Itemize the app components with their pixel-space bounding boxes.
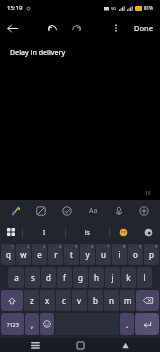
- staticText: 6: [91, 244, 94, 249]
- staticText: e: [37, 249, 42, 260]
- button[interactable]: v: [72, 290, 87, 311]
- staticText: is: [85, 228, 90, 237]
- button[interactable]: I: [23, 222, 65, 242]
- staticText: y: [85, 249, 90, 260]
- staticText: w: [20, 249, 27, 260]
- button[interactable]: g: [73, 267, 88, 288]
- staticText: 81%: [144, 5, 153, 11]
- staticText: v: [77, 295, 82, 306]
- staticText: x: [45, 295, 50, 306]
- staticText: Aa: [89, 206, 98, 216]
- button[interactable]: Done: [127, 16, 160, 40]
- staticText: I: [43, 228, 46, 237]
- button[interactable]: y: [80, 244, 95, 265]
- button[interactable]: Backspace: [136, 290, 159, 311]
- staticText: 1: [11, 244, 14, 249]
- button[interactable]: q: [1, 244, 15, 265]
- staticText: q: [6, 249, 11, 260]
- button[interactable]: s: [25, 267, 40, 288]
- staticText: m: [124, 295, 132, 306]
- staticText: g: [78, 272, 83, 283]
- staticText: 2: [27, 244, 30, 249]
- staticText: l: [143, 272, 146, 283]
- button[interactable]: Emoji keyboard: [40, 313, 54, 335]
- button[interactable]: j: [105, 267, 120, 288]
- button[interactable]: Back: [0, 16, 24, 40]
- button[interactable]: Recent apps: [25, 338, 45, 352]
- staticText: i: [118, 249, 121, 260]
- button[interactable]: d: [41, 267, 56, 288]
- staticText: 8: [123, 244, 126, 249]
- staticText: 4: [59, 244, 62, 249]
- staticText: n: [109, 295, 114, 306]
- button[interactable]: c: [56, 290, 71, 311]
- staticText: b: [93, 295, 98, 306]
- staticText: 15:19: [7, 4, 23, 12]
- button[interactable]: Emoji suggestion: [110, 222, 136, 242]
- button[interactable]: Keyboard settings: [136, 222, 160, 242]
- staticText: 9: [139, 244, 142, 249]
- staticText: Done: [134, 23, 153, 33]
- button[interactable]: Voice input: [109, 201, 129, 221]
- staticText: Delay in delivery: [10, 48, 66, 58]
- button[interactable]: Back: [115, 338, 135, 352]
- button[interactable]: Clipboard: [0, 222, 22, 242]
- button[interactable]: is: [66, 222, 109, 242]
- button[interactable]: a: [8, 267, 24, 288]
- staticText: d: [46, 272, 51, 283]
- button[interactable]: b: [88, 290, 103, 311]
- button[interactable]: h: [89, 267, 104, 288]
- button[interactable]: Enter: [135, 313, 159, 335]
- staticText: .: [126, 319, 129, 330]
- staticText: ?123: [7, 321, 19, 328]
- staticText: 3: [43, 244, 46, 249]
- staticText: 5G: [111, 6, 117, 11]
- button[interactable]: r: [48, 244, 63, 265]
- button[interactable]: Stickers: [31, 201, 51, 221]
- button[interactable]: ?123: [1, 313, 24, 335]
- staticText: o: [133, 249, 138, 260]
- staticText: 7: [107, 244, 110, 249]
- button[interactable]: u: [96, 244, 111, 265]
- button[interactable]: e: [32, 244, 47, 265]
- button[interactable]: w: [16, 244, 31, 265]
- staticText: k: [126, 272, 131, 283]
- staticText: u: [101, 249, 106, 260]
- button[interactable]: x: [40, 290, 55, 311]
- button[interactable]: .: [120, 313, 134, 335]
- staticText: h: [94, 272, 99, 283]
- staticText: t: [70, 249, 73, 260]
- button[interactable]: m: [120, 290, 135, 311]
- button[interactable]: Shift: [1, 290, 23, 311]
- staticText: z: [30, 295, 34, 306]
- button[interactable]: Redo: [65, 17, 87, 39]
- staticText: p: [149, 249, 154, 260]
- staticText: 0: [155, 244, 158, 249]
- staticText: a: [14, 272, 19, 283]
- button[interactable]: p: [144, 244, 159, 265]
- staticText: f: [63, 272, 66, 283]
- button[interactable]: Emoji: [57, 201, 77, 221]
- staticText: r: [54, 249, 58, 260]
- button[interactable]: n: [104, 290, 119, 311]
- button[interactable]: More options: [105, 17, 127, 39]
- button[interactable]: Undo: [41, 17, 63, 39]
- button[interactable]: Text style: [83, 201, 103, 221]
- button[interactable]: f: [57, 267, 72, 288]
- staticText: 5: [75, 244, 78, 249]
- button[interactable]: More: [134, 201, 154, 221]
- staticText: j: [111, 272, 114, 283]
- button[interactable]: t: [64, 244, 79, 265]
- button[interactable]: z: [24, 290, 39, 311]
- staticText: c: [62, 295, 66, 306]
- button[interactable]: AI assist: [6, 201, 26, 221]
- button[interactable]: k: [121, 267, 136, 288]
- button[interactable]: Home: [70, 338, 90, 352]
- staticText: 18: [145, 190, 151, 197]
- button[interactable]: l: [137, 267, 152, 288]
- button[interactable]: i: [112, 244, 127, 265]
- staticText: ,: [31, 319, 34, 330]
- button[interactable]: ,: [25, 313, 39, 335]
- button[interactable]: o: [128, 244, 143, 265]
